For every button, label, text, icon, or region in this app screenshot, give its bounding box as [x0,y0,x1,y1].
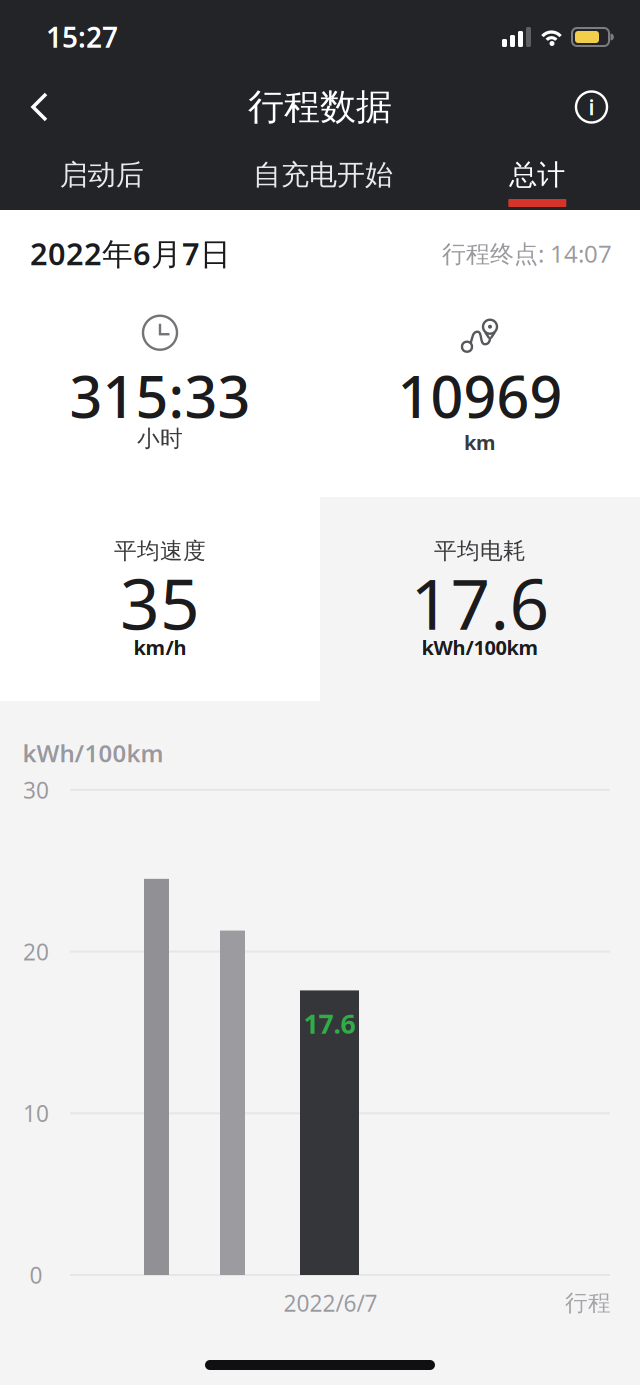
staticText: 行程 [565,1289,611,1317]
staticText: 平均电耗 [434,537,526,565]
staticText: kWh/100km [421,634,538,660]
button[interactable]: 平均电耗 [320,497,640,701]
button[interactable]: 平均速度 [0,497,320,701]
staticText: 2022/6/7 [283,1288,377,1318]
button[interactable]: 自充电开始 [216,140,430,210]
staticText: 总计 [509,158,565,192]
staticText: 10 [23,1098,49,1128]
staticText: 启动后 [60,158,144,192]
button[interactable]: Info [576,91,640,122]
button[interactable]: Back [0,92,49,122]
staticText: 自充电开始 [253,158,393,192]
staticText: 10969 [397,358,562,434]
staticText: 行程数据 [248,85,392,129]
staticText: km [464,429,496,455]
staticText: 35 [120,557,200,649]
staticText: 17.6 [303,1006,355,1041]
staticText: i [588,93,594,121]
button[interactable]: 总计 [431,140,640,210]
staticText: 2022年6月7日 [30,233,231,274]
staticText: km/h [133,634,186,660]
button[interactable]: 启动后 [0,140,208,210]
staticText: 0 [29,1260,42,1290]
staticText: 平均速度 [114,537,206,565]
staticText: 30 [23,775,49,805]
staticText: 20 [23,936,49,967]
staticText: kWh/100km [22,737,163,769]
staticText: 15:27 [46,18,118,56]
staticText: 行程终点: 14:07 [442,237,612,269]
staticText: 17.6 [410,557,549,649]
staticText: 315:33 [69,358,250,434]
staticText: 小时 [137,425,183,453]
